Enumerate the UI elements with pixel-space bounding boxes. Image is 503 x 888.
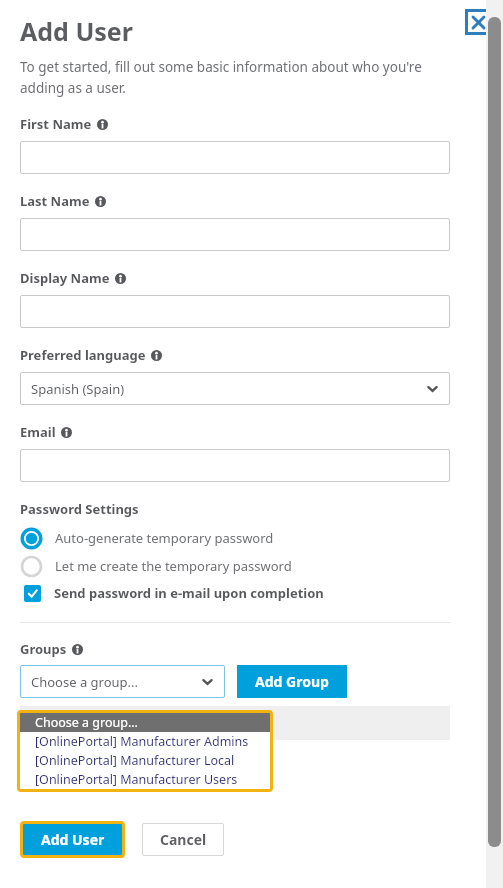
button[interactable]: Last Name [20, 218, 450, 251]
staticText: Spanish (Spain) [31, 380, 125, 398]
staticText: Preferred language [20, 346, 146, 364]
button[interactable]: Auto-generate temporary password [20, 524, 450, 552]
staticText: First Name [20, 115, 92, 133]
staticText: Email [20, 423, 56, 441]
button[interactable]: [OnlinePortal] Manufacturer Users [20, 770, 270, 789]
button[interactable]: Spanish (Spain) [20, 372, 450, 405]
staticText: [OnlinePortal] Manufacturer Admins [35, 733, 249, 750]
button[interactable]: Display Name [20, 295, 450, 328]
staticText: [OnlinePortal] Manufacturer Local Admins [35, 752, 270, 769]
button[interactable]: Close [465, 9, 491, 35]
staticText: Groups [20, 640, 67, 658]
button[interactable]: Choose a group... [20, 713, 270, 732]
button[interactable]: Cancel [142, 823, 224, 856]
staticText: Let me create the temporary password [55, 557, 292, 575]
button[interactable]: Add User [23, 824, 122, 855]
button[interactable]: [OnlinePortal] Manufacturer Admins [20, 732, 270, 751]
staticText: Display Name [20, 269, 110, 287]
staticText: Add User [41, 830, 105, 849]
button[interactable]: [OnlinePortal] Manufacturer Local Admins [20, 751, 270, 770]
staticText: Add Group [255, 672, 329, 691]
staticText: This user is not currently in any groups [24, 746, 252, 763]
staticText: Password Settings [20, 500, 139, 518]
button[interactable]: Send password in e-mail upon completion [20, 580, 450, 606]
button[interactable]: Choose a group... [20, 665, 225, 698]
button[interactable]: Email [20, 449, 450, 482]
staticText: Add User [20, 14, 133, 48]
staticText: [OnlinePortal] Manufacturer Users [35, 771, 238, 788]
staticText: Choose a group... [31, 673, 139, 691]
staticText: Last Name [20, 192, 90, 210]
staticText: Cancel [160, 830, 207, 849]
staticText: To get started, fill out some basic info… [20, 58, 450, 97]
button[interactable]: Let me create the temporary password [20, 552, 450, 580]
button[interactable]: First Name [20, 141, 450, 174]
button[interactable]: Add Group [237, 665, 347, 698]
staticText: Auto-generate temporary password [55, 529, 274, 547]
staticText: Choose a group... [35, 714, 138, 731]
staticText: Send password in e-mail upon completion [54, 584, 324, 602]
